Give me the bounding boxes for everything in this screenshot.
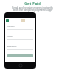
staticText: Amount [7,25,15,28]
staticText: Reference [7,45,17,48]
staticText: Get Paid [24,1,41,6]
staticText: Name [7,35,13,38]
staticText: Send and receive money instantly with th… [12,6,53,12]
other: Home [19,64,22,67]
